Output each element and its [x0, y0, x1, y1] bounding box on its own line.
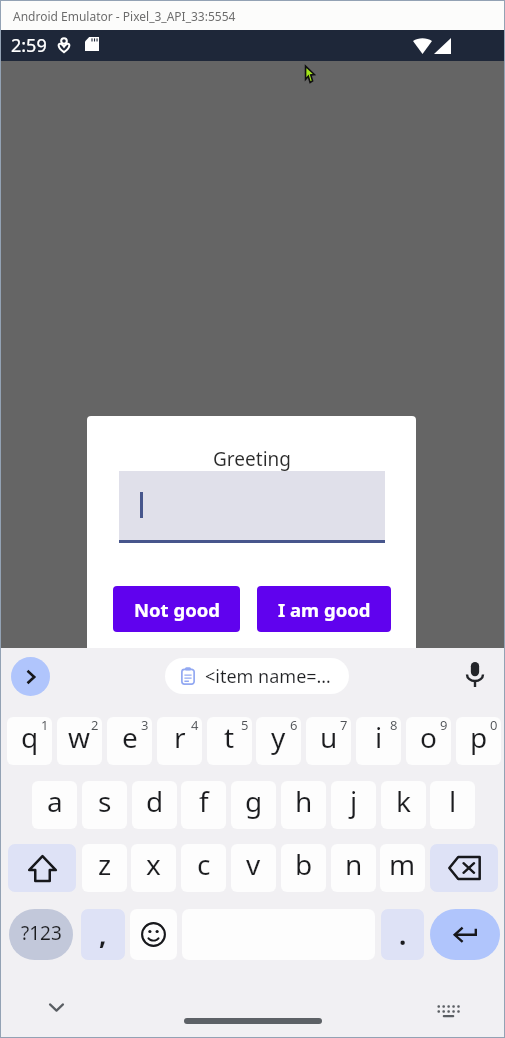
staticText: I am good: [278, 597, 371, 622]
button[interactable]: i: [356, 717, 401, 765]
button[interactable]: d: [132, 781, 177, 829]
button[interactable]: x: [131, 844, 176, 892]
staticText: n: [345, 845, 363, 883]
button[interactable]: s: [82, 781, 127, 829]
staticText: z: [98, 845, 112, 883]
button[interactable]: e: [107, 717, 152, 765]
staticText: p: [470, 718, 488, 756]
button[interactable]: Hide keyboard: [40, 991, 73, 1024]
staticText: o: [420, 718, 437, 756]
staticText: 4: [191, 717, 199, 734]
staticText: u: [320, 718, 338, 756]
button[interactable]: ?123: [9, 909, 73, 960]
staticText: 3: [141, 717, 149, 734]
button[interactable]: c: [181, 844, 226, 892]
button[interactable]: r: [157, 717, 202, 765]
button[interactable]: f: [181, 781, 226, 829]
button[interactable]: w: [57, 717, 102, 765]
staticText: 0: [490, 717, 498, 734]
staticText: x: [146, 845, 161, 883]
button[interactable]: o: [406, 717, 451, 765]
button[interactable]: .: [381, 909, 424, 960]
staticText: t: [224, 718, 235, 756]
staticText: Greeting: [119, 446, 385, 472]
button[interactable]: z: [82, 844, 127, 892]
staticText: s: [98, 782, 112, 820]
staticText: e: [122, 718, 138, 756]
button[interactable]: Enter: [430, 909, 500, 960]
button[interactable]: I am good: [257, 586, 391, 632]
button[interactable]: n: [331, 844, 376, 892]
staticText: 7: [340, 717, 348, 734]
button[interactable]: Voice input: [459, 659, 490, 690]
staticText: 5: [241, 717, 249, 734]
staticText: 2: [91, 717, 99, 734]
staticText: h: [295, 782, 313, 820]
staticText: 9: [440, 717, 448, 734]
staticText: k: [396, 782, 411, 820]
staticText: q: [21, 718, 39, 756]
button[interactable]: b: [281, 844, 326, 892]
staticText: d: [146, 782, 164, 820]
button[interactable]: Shift: [8, 844, 76, 892]
staticText: 6: [290, 717, 298, 734]
button[interactable]: Expand toolbar: [11, 657, 50, 696]
button[interactable]: Not good: [113, 586, 240, 632]
staticText: ?123: [21, 920, 62, 946]
staticText: <item name=…: [205, 664, 331, 689]
staticText: ,: [99, 917, 107, 952]
staticText: f: [199, 782, 209, 820]
staticText: w: [68, 718, 91, 756]
button[interactable]: y: [256, 717, 301, 765]
staticText: r: [174, 718, 186, 756]
staticText: v: [246, 845, 261, 883]
button[interactable]: v: [231, 844, 276, 892]
button[interactable]: u: [306, 717, 351, 765]
staticText: g: [245, 782, 263, 820]
button[interactable]: t: [207, 717, 252, 765]
button[interactable]: a: [32, 781, 77, 829]
staticText: 1: [41, 717, 49, 734]
staticText: b: [295, 845, 313, 883]
button[interactable]: j: [331, 781, 376, 829]
staticText: c: [197, 845, 211, 883]
button[interactable]: g: [231, 781, 276, 829]
staticText: i: [375, 718, 383, 756]
button[interactable]: <item name=…: [165, 658, 349, 694]
staticText: .: [399, 917, 407, 952]
button[interactable]: Backspace: [430, 844, 498, 892]
button[interactable]: q: [7, 717, 52, 765]
button[interactable]: l: [430, 781, 475, 829]
staticText: y: [271, 718, 286, 756]
staticText: 2:59: [11, 33, 47, 58]
button[interactable]: k: [381, 781, 426, 829]
button[interactable]: m: [380, 844, 425, 892]
staticText: m: [389, 845, 416, 883]
button[interactable]: Emoji: [130, 909, 177, 960]
staticText: Not good: [134, 597, 220, 622]
button[interactable]: Switch keyboard: [432, 994, 465, 1027]
button[interactable]: h: [281, 781, 326, 829]
button[interactable]: p: [456, 717, 501, 765]
button[interactable]: ,: [81, 909, 125, 960]
staticText: a: [47, 782, 63, 820]
staticText: 8: [390, 717, 398, 734]
staticText: j: [350, 782, 358, 820]
staticText: Android Emulator - Pixel_3_API_33:5554: [13, 8, 236, 24]
staticText: l: [449, 782, 457, 820]
